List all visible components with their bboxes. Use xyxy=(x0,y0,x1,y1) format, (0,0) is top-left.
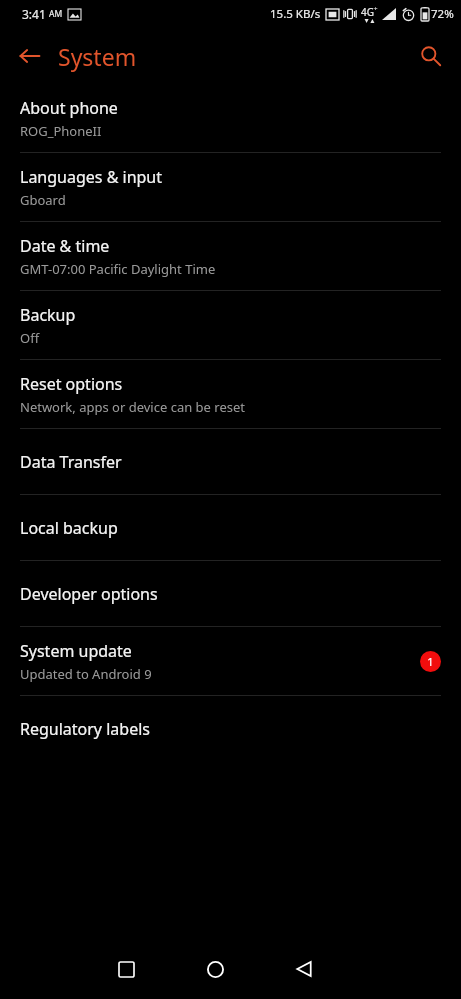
staticText: Network, apps or device can be reset xyxy=(20,398,245,416)
staticText: System xyxy=(58,41,137,72)
button[interactable]: Regulatory labels xyxy=(0,696,461,761)
staticText: Local backup xyxy=(20,517,118,539)
staticText: System update xyxy=(20,640,132,662)
staticText: 72% xyxy=(431,6,454,22)
button[interactable]: Back xyxy=(8,34,52,78)
staticText: About phone xyxy=(20,97,118,119)
staticText: 1 xyxy=(427,654,434,669)
button[interactable]: Home xyxy=(189,943,241,995)
staticText: 4G xyxy=(361,5,374,19)
button[interactable]: Developer options xyxy=(0,561,461,626)
button[interactable]: Date & time xyxy=(0,222,461,290)
staticText: 3:41 xyxy=(22,6,46,22)
button[interactable]: Data Transfer xyxy=(0,429,461,494)
button[interactable]: Back xyxy=(278,943,330,995)
staticText: Backup xyxy=(20,304,76,326)
button[interactable]: Search xyxy=(409,34,453,78)
staticText: Reset options xyxy=(20,373,123,395)
staticText: Languages & input xyxy=(20,166,163,188)
staticText: Date & time xyxy=(20,235,110,257)
staticText: + xyxy=(374,5,378,13)
button[interactable]: Reset options xyxy=(0,360,461,428)
button[interactable]: Languages & input xyxy=(0,153,461,221)
staticText: Gboard xyxy=(20,191,66,209)
staticText: Data Transfer xyxy=(20,451,122,473)
button[interactable]: Recent apps xyxy=(100,943,152,995)
staticText: Off xyxy=(20,329,40,347)
staticText: Regulatory labels xyxy=(20,718,150,740)
button[interactable]: Backup xyxy=(0,291,461,359)
button[interactable]: System update xyxy=(0,627,461,695)
button[interactable]: Local backup xyxy=(0,495,461,560)
staticText: Updated to Android 9 xyxy=(20,665,152,683)
staticText: 15.5 KB/s xyxy=(270,6,321,22)
staticText: Developer options xyxy=(20,583,158,605)
staticText: GMT-07:00 Pacific Daylight Time xyxy=(20,260,216,278)
staticText: ROG_PhoneII xyxy=(20,122,102,140)
button[interactable]: About phone xyxy=(0,84,461,152)
staticText: AM xyxy=(49,8,63,20)
